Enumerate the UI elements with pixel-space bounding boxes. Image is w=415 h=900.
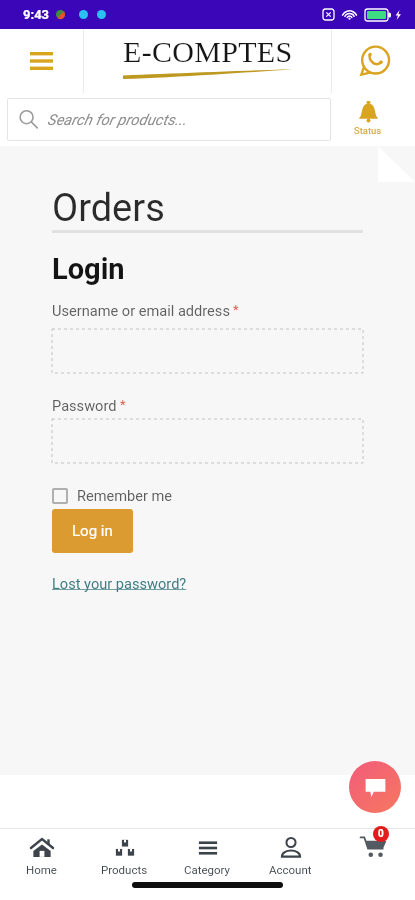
staticText: Search for products... bbox=[47, 111, 187, 129]
staticText: Products bbox=[101, 863, 148, 876]
staticText: * bbox=[233, 302, 239, 317]
staticText: Home bbox=[26, 863, 57, 876]
staticText: Login bbox=[52, 252, 125, 286]
button[interactable]: Search for products... bbox=[7, 98, 331, 141]
staticText: E-COMPTES bbox=[123, 35, 293, 68]
button[interactable]: WhatsApp bbox=[332, 29, 415, 93]
staticText: Orders bbox=[52, 186, 165, 231]
staticText: Username or email address bbox=[52, 302, 230, 319]
button[interactable]: Cart bbox=[332, 829, 415, 878]
button[interactable]: Products bbox=[83, 829, 166, 878]
button[interactable]: Status bbox=[331, 93, 405, 146]
staticText: 0 bbox=[378, 828, 384, 840]
staticText: Log in bbox=[72, 522, 113, 540]
button[interactable]: Menu bbox=[0, 29, 83, 93]
button[interactable]: Category bbox=[166, 829, 249, 878]
button[interactable]: Lost your password? bbox=[52, 575, 187, 592]
staticText: Category bbox=[184, 863, 231, 876]
staticText: Account bbox=[269, 863, 312, 876]
staticText: * bbox=[120, 397, 126, 412]
staticText: 9:43 bbox=[23, 7, 50, 22]
staticText: Status bbox=[354, 125, 382, 136]
staticText: Password bbox=[52, 397, 117, 414]
button[interactable]: Log in bbox=[52, 509, 133, 553]
button[interactable]: Home bbox=[0, 829, 83, 878]
button[interactable]: Account bbox=[249, 829, 332, 878]
staticText: Remember me bbox=[77, 487, 173, 504]
button[interactable]: Chat bbox=[349, 761, 401, 813]
button[interactable]: Remember me bbox=[52, 487, 173, 504]
